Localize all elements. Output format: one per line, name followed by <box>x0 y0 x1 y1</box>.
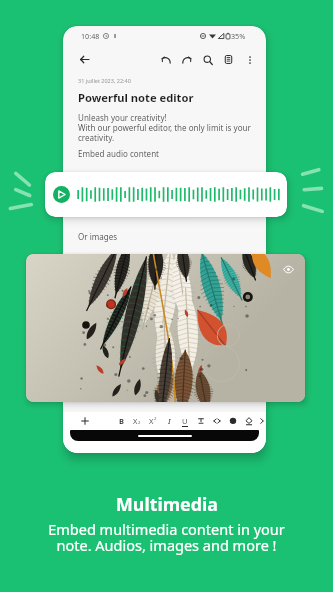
staticText: Multimedia <box>116 492 218 516</box>
button[interactable]: Subscript <box>129 413 145 429</box>
button[interactable]: B <box>113 413 129 429</box>
staticText: 2 <box>138 420 141 426</box>
button[interactable]: I <box>161 413 177 429</box>
button[interactable]: More options <box>239 49 260 70</box>
staticText: Or images <box>78 231 118 242</box>
button[interactable]: Superscript <box>145 413 161 429</box>
button[interactable]: Play audio <box>53 186 70 203</box>
button[interactable]: Play audio <box>45 172 287 217</box>
button[interactable]: Add <box>77 413 93 429</box>
staticText: 31 juillet 2023, 22:40 <box>78 77 131 84</box>
button[interactable]: Strikethrough <box>193 413 209 429</box>
staticText: 10:48 <box>81 31 100 41</box>
button[interactable]: More formatting <box>257 413 266 429</box>
staticText: Embed multimedia content in your note. A… <box>48 519 285 556</box>
button[interactable]: Text colour <box>225 413 241 429</box>
button[interactable]: Underline <box>177 413 193 429</box>
staticText: X <box>133 416 138 426</box>
button[interactable]: Back <box>76 51 93 68</box>
button[interactable]: Undo <box>155 49 176 70</box>
button[interactable]: Fill colour <box>241 413 257 429</box>
staticText: B <box>119 416 124 426</box>
staticText: Unleash your creativity! With our powerf… <box>78 112 251 144</box>
button[interactable]: Notebook <box>218 49 239 70</box>
button[interactable]: Redo <box>176 49 197 70</box>
staticText: U <box>182 416 188 426</box>
staticText: Embed audio content <box>78 148 160 159</box>
button[interactable]: Code <box>209 413 225 429</box>
staticText: X <box>149 416 154 426</box>
staticText: I <box>168 416 171 426</box>
staticText: 2 <box>154 416 157 422</box>
button[interactable]: View image <box>26 254 305 402</box>
button[interactable]: Search <box>197 49 218 70</box>
staticText: 35% <box>231 31 246 41</box>
button[interactable]: View image <box>281 262 296 277</box>
staticText: Powerful note editor <box>78 90 194 105</box>
